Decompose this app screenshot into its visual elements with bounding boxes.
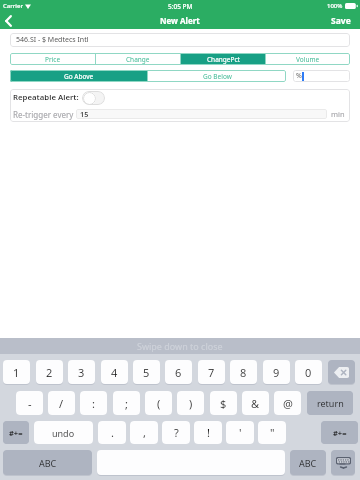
staticText: 3: [78, 365, 85, 380]
button[interactable]: ChangePct: [181, 53, 265, 65]
button[interactable]: Back: [0, 12, 19, 29]
staticText: 15: [80, 109, 89, 119]
staticText: .: [111, 425, 114, 440]
staticText: &: [251, 396, 260, 411]
button[interactable]: @: [274, 391, 301, 415]
button[interactable]: 6: [165, 360, 192, 384]
button[interactable]: return: [307, 391, 353, 415]
button[interactable]: ?: [162, 421, 190, 444]
staticText: 5: [143, 365, 150, 380]
button[interactable]: :: [80, 391, 107, 415]
staticText: Change: [126, 55, 150, 64]
staticText: 0: [305, 365, 312, 380]
staticText: ,: [143, 425, 146, 440]
button[interactable]: 4: [101, 360, 128, 384]
button[interactable]: Go Above: [10, 70, 147, 82]
button[interactable]: ,: [130, 421, 158, 444]
staticText: @: [283, 396, 293, 411]
staticText: 7: [208, 365, 215, 380]
button[interactable]: Backspace: [328, 360, 355, 384]
button[interactable]: /: [48, 391, 75, 415]
button[interactable]: $: [210, 391, 237, 415]
staticText: -: [28, 396, 32, 411]
staticText: ABC: [299, 457, 317, 469]
button[interactable]: (: [145, 391, 172, 415]
button[interactable]: ': [226, 421, 254, 444]
staticText: 8: [240, 365, 247, 380]
button[interactable]: ": [258, 421, 286, 444]
button[interactable]: 15: [76, 109, 327, 119]
staticText: Carrier: [3, 2, 23, 10]
staticText: Go Below: [203, 72, 232, 81]
staticText: min: [331, 109, 345, 119]
button[interactable]: Go Below: [148, 70, 286, 82]
staticText: undo: [52, 427, 75, 439]
button[interactable]: #+=: [3, 421, 29, 444]
staticText: ": [270, 425, 275, 440]
button[interactable]: .: [98, 421, 126, 444]
button[interactable]: 7: [198, 360, 225, 384]
staticText: 9: [273, 365, 280, 380]
button[interactable]: &: [242, 391, 269, 415]
button[interactable]: -: [16, 391, 43, 415]
staticText: 1: [13, 365, 20, 380]
button[interactable]: ABC: [3, 450, 92, 475]
button[interactable]: 3: [68, 360, 95, 384]
button[interactable]: Volume: [266, 53, 350, 65]
button[interactable]: 8: [230, 360, 257, 384]
button[interactable]: !: [194, 421, 222, 444]
staticText: ChangePct: [207, 55, 240, 64]
button[interactable]: 5: [133, 360, 160, 384]
staticText: #+=: [9, 428, 23, 438]
staticText: :: [92, 396, 95, 411]
button[interactable]: 2: [36, 360, 63, 384]
button[interactable]: 0: [295, 360, 322, 384]
staticText: Re-trigger every: [13, 109, 74, 120]
button[interactable]: Repeatable Alert toggle: [82, 91, 105, 105]
button[interactable]: Hide keyboard: [331, 450, 355, 475]
button[interactable]: Price: [10, 53, 95, 65]
staticText: 5:05 PM: [168, 2, 193, 11]
button[interactable]: undo: [34, 421, 93, 444]
staticText: #+=: [333, 428, 347, 438]
staticText: (: [157, 396, 161, 411]
staticText: 2: [46, 365, 53, 380]
staticText: Volume: [296, 55, 320, 64]
button[interactable]: 1: [3, 360, 30, 384]
button[interactable]: 546.SI - $ Medtecs Intl: [10, 33, 350, 47]
staticText: ): [189, 396, 193, 411]
button[interactable]: Save: [321, 12, 360, 29]
button[interactable]: ): [177, 391, 204, 415]
staticText: ;: [125, 396, 128, 411]
staticText: 6: [175, 365, 182, 380]
staticText: 4: [111, 365, 118, 380]
staticText: New Alert: [160, 15, 200, 26]
staticText: ': [239, 425, 242, 440]
button[interactable]: ABC: [290, 450, 326, 475]
staticText: ABC: [39, 457, 57, 469]
button[interactable]: ;: [113, 391, 140, 415]
staticText: ?: [174, 425, 179, 440]
staticText: Save: [331, 15, 351, 27]
staticText: !: [207, 425, 210, 440]
staticText: 546.SI - $ Medtecs Intl: [16, 35, 89, 45]
staticText: %: [296, 71, 302, 81]
button[interactable]: #+=: [321, 421, 358, 444]
button[interactable]: Change: [96, 53, 180, 65]
staticText: Swipe down to close: [137, 340, 223, 352]
button[interactable]: 9: [263, 360, 290, 384]
button[interactable]: %: [293, 70, 350, 82]
staticText: $: [220, 396, 227, 411]
staticText: Price: [45, 55, 61, 64]
staticText: Repeatable Alert:: [13, 92, 79, 103]
staticText: return: [317, 397, 344, 409]
staticText: 100%: [327, 2, 343, 10]
staticText: Go Above: [64, 72, 94, 81]
staticText: /: [59, 396, 64, 411]
